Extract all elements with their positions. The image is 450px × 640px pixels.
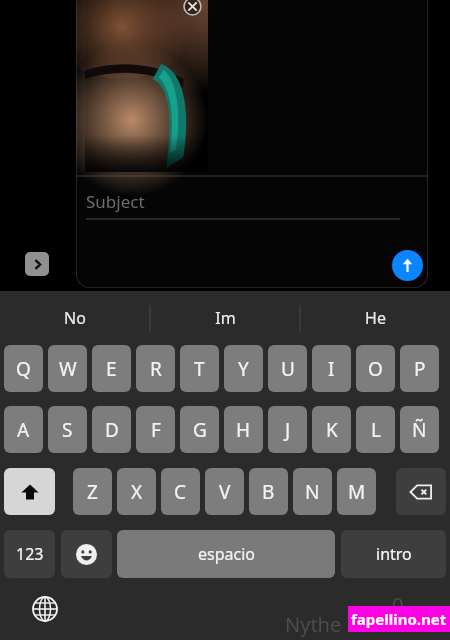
staticText: E — [106, 356, 117, 382]
staticText: C — [174, 479, 187, 505]
button[interactable]: Y — [224, 345, 263, 392]
staticText: T — [194, 356, 205, 382]
staticText: S — [62, 417, 73, 443]
button[interactable]: R — [136, 345, 175, 392]
staticText: J — [285, 417, 291, 443]
staticText: O — [368, 356, 383, 382]
button[interactable]: B — [249, 468, 288, 515]
staticText: K — [326, 417, 338, 443]
button[interactable]: Remove attachment — [85, 0, 208, 172]
staticText: Nythe — [285, 611, 342, 638]
button[interactable]: Expand recipients — [25, 252, 49, 276]
staticText: B — [262, 479, 275, 505]
button[interactable]: E — [92, 345, 131, 392]
staticText: 0. — [392, 591, 409, 618]
staticText: N — [305, 479, 320, 505]
button[interactable]: H — [224, 406, 263, 453]
button[interactable]: F — [136, 406, 175, 453]
button[interactable]: A — [4, 406, 43, 453]
button[interactable]: K — [312, 406, 351, 453]
staticText: U — [281, 356, 295, 382]
staticText: Subject — [86, 190, 145, 213]
staticText: espacio — [198, 543, 255, 565]
staticText: 123 — [16, 543, 44, 565]
staticText: D — [105, 417, 119, 443]
staticText: R — [150, 356, 162, 382]
button[interactable]: I — [312, 345, 351, 392]
staticText: H — [236, 417, 251, 443]
button[interactable]: Send — [392, 250, 423, 281]
staticText: V — [219, 479, 231, 505]
button[interactable]: S — [48, 406, 87, 453]
button[interactable]: No — [0, 291, 150, 345]
button[interactable]: espacio — [117, 530, 335, 578]
button[interactable]: Q — [4, 345, 43, 392]
staticText: Z — [87, 479, 98, 505]
staticText: Ñ — [412, 417, 427, 443]
button[interactable]: X — [117, 468, 156, 515]
button[interactable]: Z — [73, 468, 112, 515]
button[interactable]: L — [356, 406, 395, 453]
staticText: Q — [16, 356, 31, 382]
button[interactable]: Subject — [86, 186, 400, 216]
button[interactable]: T — [180, 345, 219, 392]
staticText: He — [365, 307, 386, 329]
staticText: Im — [215, 307, 236, 329]
button[interactable]: Emoji — [61, 530, 112, 578]
staticText: intro — [376, 543, 412, 565]
button[interactable]: He — [300, 291, 450, 345]
button[interactable]: Shift — [4, 468, 55, 515]
staticText: No — [64, 307, 86, 329]
button[interactable]: intro — [341, 530, 446, 578]
staticText: M — [348, 479, 366, 505]
button[interactable]: D — [92, 406, 131, 453]
button[interactable]: Im — [150, 291, 300, 345]
button[interactable]: O — [356, 345, 395, 392]
button[interactable]: G — [180, 406, 219, 453]
staticText: W — [59, 356, 77, 382]
button[interactable]: N — [293, 468, 332, 515]
button[interactable]: P — [400, 345, 439, 392]
button[interactable]: Remove attachment — [183, 0, 202, 16]
staticText: fapellino.net — [351, 609, 447, 629]
staticText: P — [414, 356, 426, 382]
staticText: L — [371, 417, 381, 443]
staticText: Y — [238, 356, 249, 382]
button[interactable]: U — [268, 345, 307, 392]
staticText: A — [17, 417, 30, 443]
staticText: I — [328, 356, 335, 382]
button[interactable]: M — [337, 468, 376, 515]
button[interactable]: 123 — [4, 530, 55, 578]
button[interactable]: Remove attachment — [76, 0, 428, 288]
staticText: G — [193, 417, 207, 443]
button[interactable]: C — [161, 468, 200, 515]
button[interactable]: V — [205, 468, 244, 515]
button[interactable]: Change language — [28, 592, 62, 626]
button[interactable]: J — [268, 406, 307, 453]
button[interactable]: Backspace — [396, 468, 446, 515]
button[interactable]: W — [48, 345, 87, 392]
staticText: F — [151, 417, 161, 443]
staticText: X — [131, 479, 143, 505]
button[interactable]: Ñ — [400, 406, 439, 453]
